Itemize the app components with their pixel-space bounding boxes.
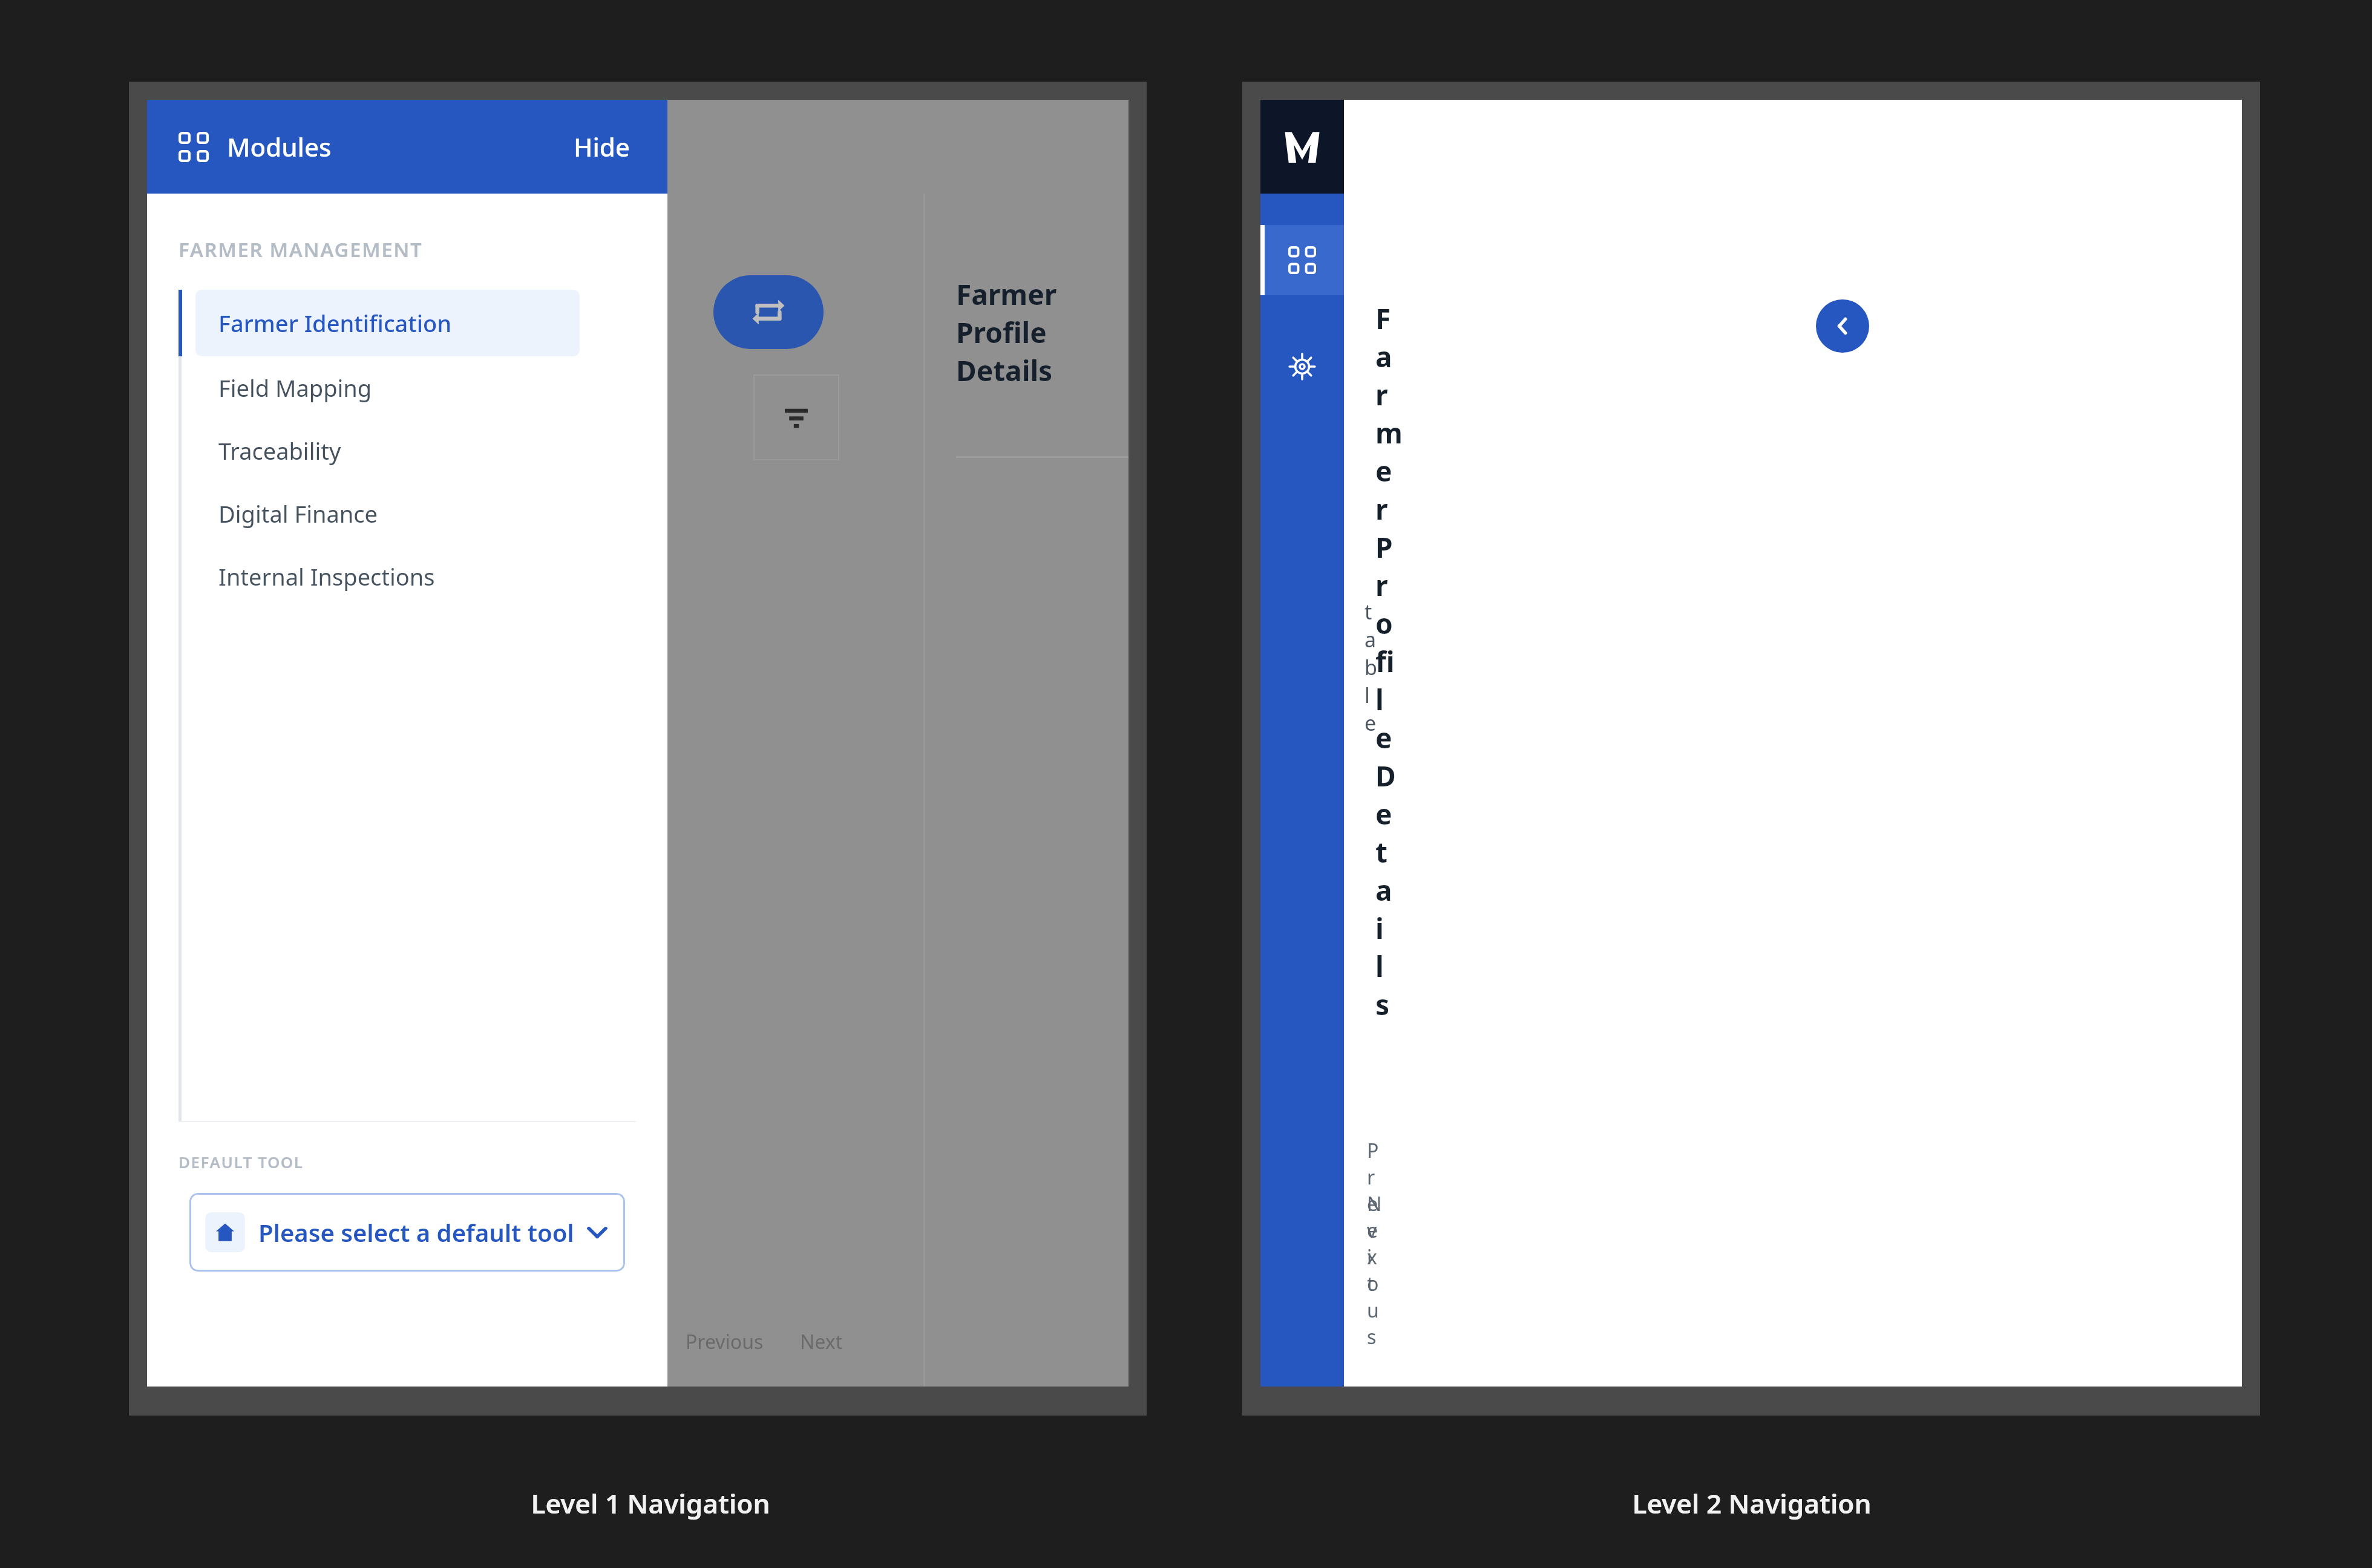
button[interactable]: Internal Inspections bbox=[179, 545, 667, 608]
staticText: Traceability bbox=[218, 435, 341, 466]
button[interactable]: Collapse menu bbox=[1816, 299, 1869, 353]
staticText: Level 2 Navigation bbox=[1607, 1485, 1897, 1521]
button[interactable]: Modules bbox=[1260, 225, 1344, 295]
staticText: Farmer Identification bbox=[218, 307, 452, 339]
button[interactable]: Traceability bbox=[179, 419, 667, 482]
staticText: Internal Inspections bbox=[218, 561, 435, 592]
button[interactable]: Farmer Identification bbox=[179, 290, 667, 356]
staticText: Next bbox=[800, 1328, 843, 1355]
button[interactable]: Hide bbox=[568, 123, 636, 170]
staticText: Level 1 Navigation bbox=[505, 1485, 796, 1521]
other: Modules bbox=[179, 132, 209, 162]
staticText: DEFAULT TOOL bbox=[179, 1151, 304, 1172]
staticText: Field Mapping bbox=[218, 372, 372, 403]
staticText: Digital Finance bbox=[218, 498, 378, 529]
staticText: Farmer Profile Details bbox=[956, 275, 1129, 390]
button[interactable]: Field Mapping bbox=[179, 356, 667, 419]
staticText: Modules bbox=[227, 129, 332, 164]
button[interactable]: Settings bbox=[1260, 332, 1344, 402]
button[interactable]: Digital Finance bbox=[179, 482, 667, 545]
staticText: Previous bbox=[686, 1328, 764, 1355]
staticText: Hide bbox=[574, 129, 630, 164]
button[interactable]: Please select a default tool bbox=[189, 1193, 625, 1272]
staticText: FARMER MANAGEMENT bbox=[179, 236, 423, 263]
staticText: Please select a default tool bbox=[258, 1216, 574, 1249]
